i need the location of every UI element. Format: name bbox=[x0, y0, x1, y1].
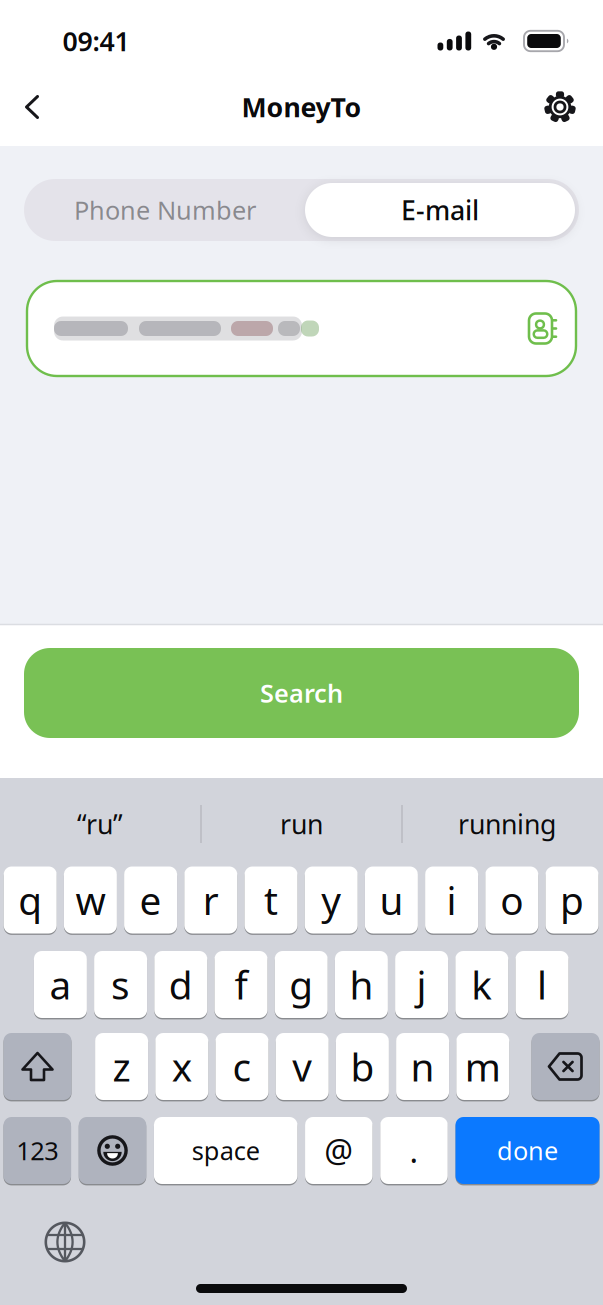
button[interactable]: r bbox=[184, 865, 237, 934]
staticText: b bbox=[350, 1041, 374, 1092]
button[interactable]: n bbox=[396, 1032, 449, 1101]
staticText: g bbox=[289, 959, 313, 1010]
button[interactable]: s bbox=[94, 950, 147, 1019]
button[interactable]: done bbox=[455, 1116, 599, 1185]
staticText: o bbox=[500, 874, 523, 926]
staticText: n bbox=[411, 1041, 435, 1092]
button[interactable]: running bbox=[412, 789, 602, 859]
staticText: Phone Number bbox=[74, 193, 256, 227]
staticText: i bbox=[447, 874, 457, 926]
button[interactable]: g bbox=[275, 950, 328, 1019]
button[interactable]: v bbox=[276, 1032, 329, 1101]
button[interactable]: o bbox=[485, 865, 538, 934]
staticText: Search bbox=[260, 676, 343, 710]
button[interactable]: j bbox=[395, 950, 448, 1019]
button[interactable]: b bbox=[336, 1032, 389, 1101]
staticText: f bbox=[234, 959, 247, 1010]
staticText: MoneyTo bbox=[241, 89, 361, 125]
button[interactable]: q bbox=[4, 865, 57, 934]
button[interactable]: Shift bbox=[3, 1032, 71, 1101]
button[interactable]: e bbox=[124, 865, 177, 934]
button[interactable]: Settings bbox=[538, 85, 582, 129]
staticText: space bbox=[192, 1134, 260, 1167]
staticText: z bbox=[113, 1041, 131, 1092]
staticText: d bbox=[169, 959, 193, 1010]
staticText: running bbox=[458, 806, 556, 842]
button[interactable]: w bbox=[64, 865, 117, 934]
staticText: 09:41 bbox=[62, 23, 129, 59]
staticText: 123 bbox=[16, 1134, 58, 1167]
button[interactable]: u bbox=[365, 865, 418, 934]
button[interactable]: E-mail bbox=[305, 183, 575, 237]
staticText: q bbox=[18, 874, 42, 926]
button[interactable]: y bbox=[305, 865, 358, 934]
button[interactable]: Phone Number bbox=[26, 179, 303, 241]
staticText: l bbox=[537, 959, 547, 1010]
button[interactable]: “ru” bbox=[5, 789, 195, 859]
staticText: @ bbox=[324, 1129, 353, 1172]
button[interactable]: l bbox=[515, 950, 568, 1019]
button[interactable]: c bbox=[215, 1032, 268, 1101]
staticText: “ru” bbox=[77, 806, 123, 842]
staticText: u bbox=[379, 874, 403, 926]
staticText: run bbox=[280, 806, 323, 842]
button[interactable]: Choose contact bbox=[520, 306, 564, 350]
button[interactable]: a bbox=[34, 950, 87, 1019]
button[interactable]: Next keyboard bbox=[43, 1220, 87, 1264]
button[interactable]: Emoji bbox=[79, 1116, 146, 1185]
button[interactable]: 123 bbox=[3, 1116, 71, 1185]
staticText: w bbox=[75, 874, 105, 926]
staticText: t bbox=[264, 874, 278, 926]
staticText: E-mail bbox=[401, 192, 479, 228]
button[interactable]: h bbox=[335, 950, 388, 1019]
staticText: r bbox=[203, 874, 219, 926]
staticText: y bbox=[321, 874, 341, 926]
staticText: a bbox=[49, 959, 71, 1010]
button[interactable]: x bbox=[155, 1032, 208, 1101]
button[interactable]: space bbox=[154, 1116, 297, 1185]
button[interactable]: z bbox=[95, 1032, 148, 1101]
button[interactable]: d bbox=[154, 950, 207, 1019]
staticText: done bbox=[497, 1134, 558, 1167]
staticText: e bbox=[140, 874, 162, 926]
button[interactable]: m bbox=[456, 1032, 509, 1101]
staticText: j bbox=[417, 959, 427, 1010]
button[interactable]: @ bbox=[305, 1116, 373, 1185]
button[interactable]: Back bbox=[10, 85, 54, 129]
button[interactable]: Search bbox=[24, 648, 579, 738]
staticText: h bbox=[349, 959, 373, 1010]
button[interactable]: run bbox=[206, 789, 396, 859]
button[interactable]: i bbox=[425, 865, 478, 934]
staticText: . bbox=[409, 1129, 418, 1172]
staticText: v bbox=[292, 1041, 312, 1092]
staticText: c bbox=[232, 1041, 251, 1092]
button[interactable]: t bbox=[244, 865, 297, 934]
button[interactable]: Delete bbox=[531, 1032, 599, 1101]
button[interactable]: f bbox=[214, 950, 267, 1019]
staticText: k bbox=[471, 959, 492, 1010]
button[interactable]: . bbox=[380, 1116, 448, 1185]
staticText: x bbox=[172, 1041, 192, 1092]
staticText: s bbox=[111, 959, 130, 1010]
staticText: m bbox=[465, 1041, 501, 1092]
button[interactable]: k bbox=[455, 950, 508, 1019]
staticText: p bbox=[560, 874, 584, 926]
button[interactable]: p bbox=[545, 865, 598, 934]
